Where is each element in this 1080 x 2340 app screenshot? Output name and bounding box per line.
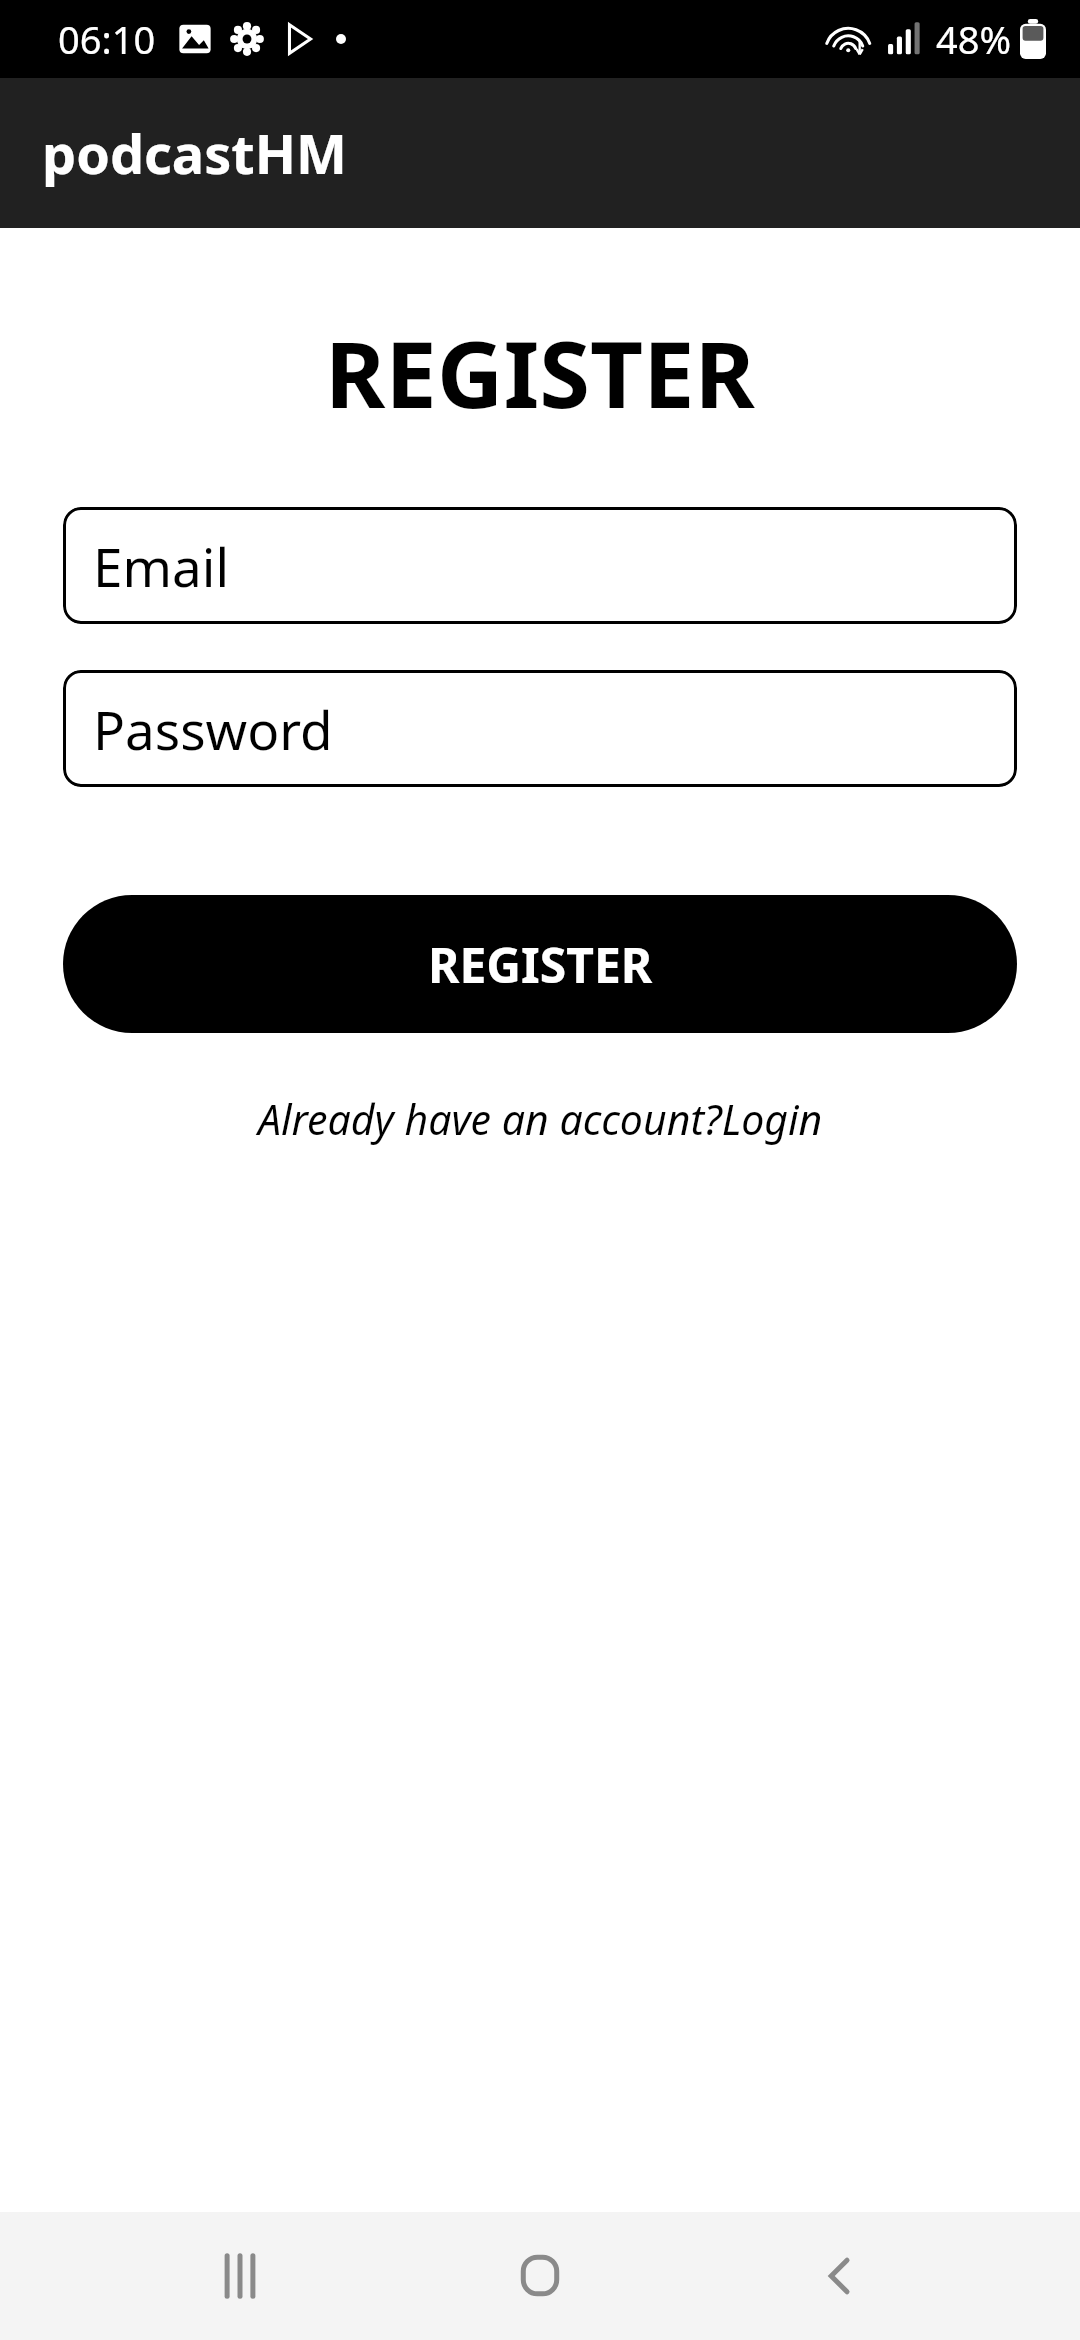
staticText: Password [93, 693, 333, 765]
staticText: Email [93, 530, 230, 602]
button[interactable]: Back [780, 2216, 900, 2336]
button[interactable]: Password [63, 670, 1017, 787]
staticText: podcastHM [42, 116, 347, 190]
staticText: REGISTER [325, 310, 755, 435]
button[interactable]: Recent apps [180, 2216, 300, 2336]
button[interactable]: REGISTER [63, 895, 1017, 1033]
staticText: 48% [936, 13, 1012, 65]
staticText: Already have an account?Login [258, 1091, 823, 1147]
button[interactable]: Email [63, 507, 1017, 624]
staticText: REGISTER [428, 932, 653, 997]
button[interactable]: Already have an account?Login [246, 1085, 835, 1153]
staticText: 06:10 [58, 13, 156, 65]
button[interactable]: Home [480, 2216, 600, 2336]
